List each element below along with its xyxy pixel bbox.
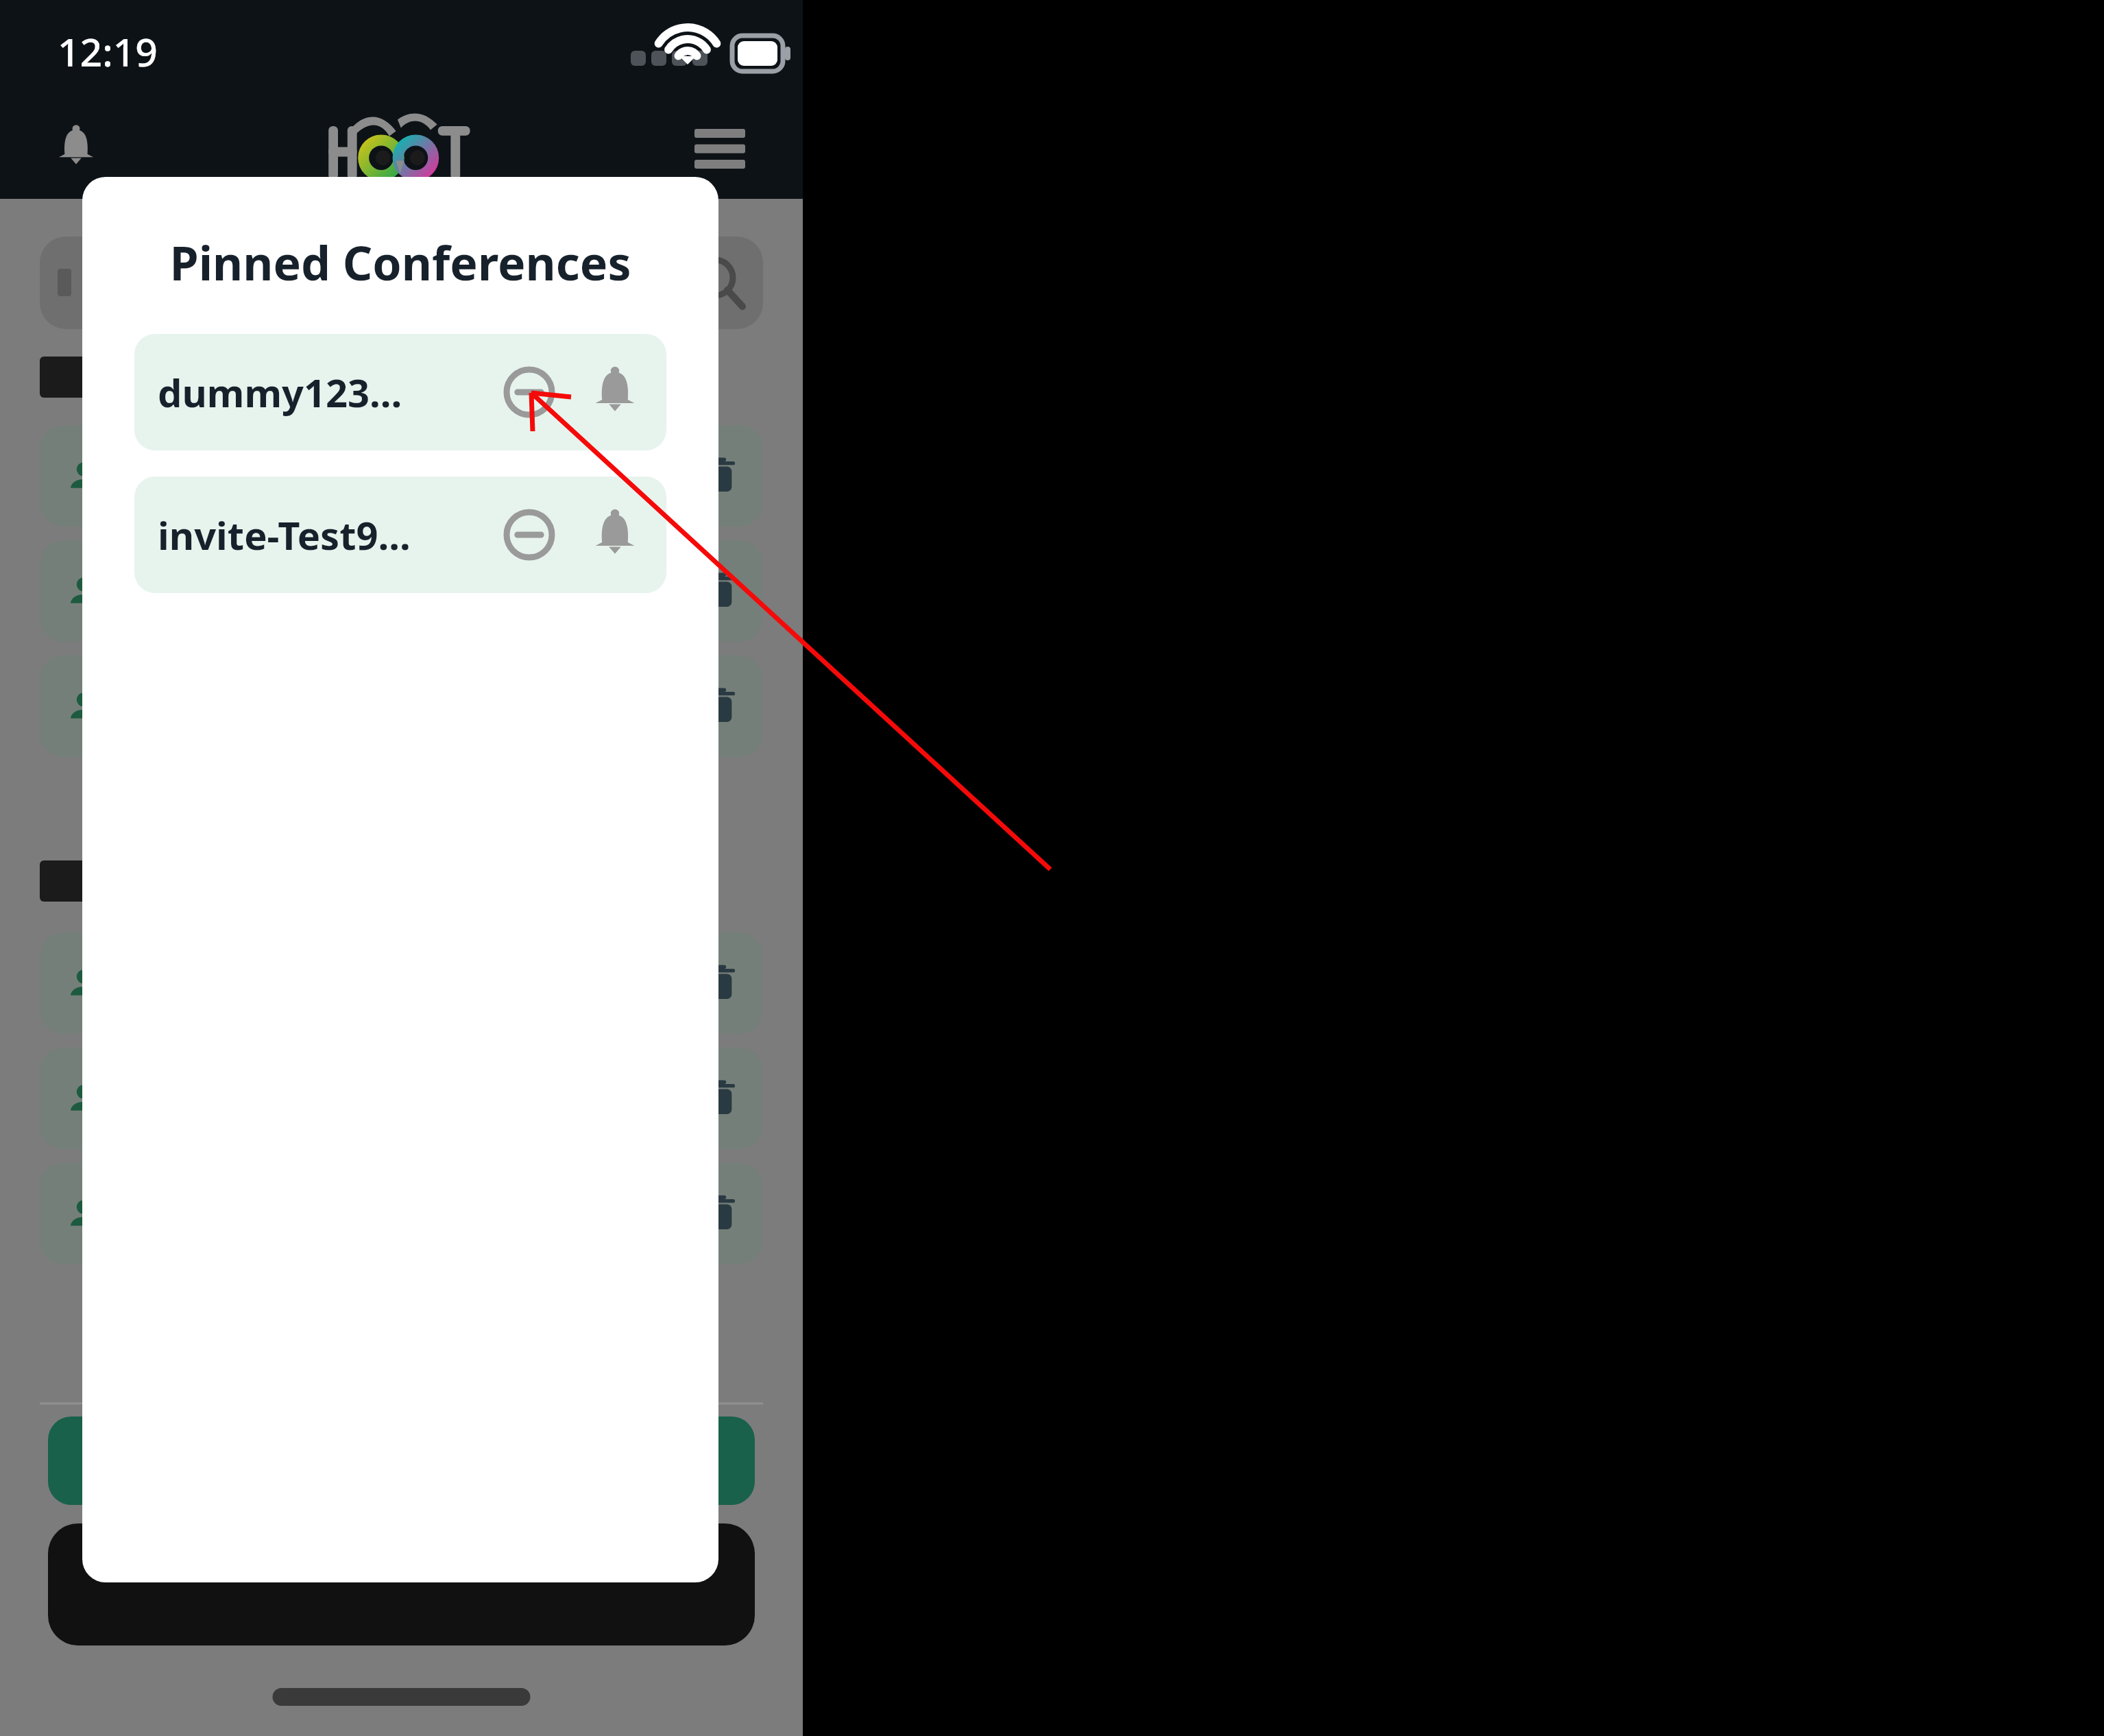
button[interactable]: Notification settings: [570, 348, 660, 437]
button[interactable]: Unpin conference: [488, 351, 570, 433]
staticText: dummy123...: [158, 366, 402, 418]
button[interactable]: Notifications: [38, 110, 114, 185]
staticText: 12:19: [58, 25, 158, 78]
button[interactable]: Notification settings: [570, 490, 660, 579]
button[interactable]: dummy123...: [134, 334, 666, 450]
button[interactable]: Menu: [675, 111, 764, 186]
button[interactable]: invite-Test9...: [134, 477, 666, 593]
staticText: Pinned Conferences: [82, 230, 718, 294]
staticText: invite-Test9...: [158, 509, 411, 561]
button[interactable]: Unpin conference: [488, 494, 570, 576]
